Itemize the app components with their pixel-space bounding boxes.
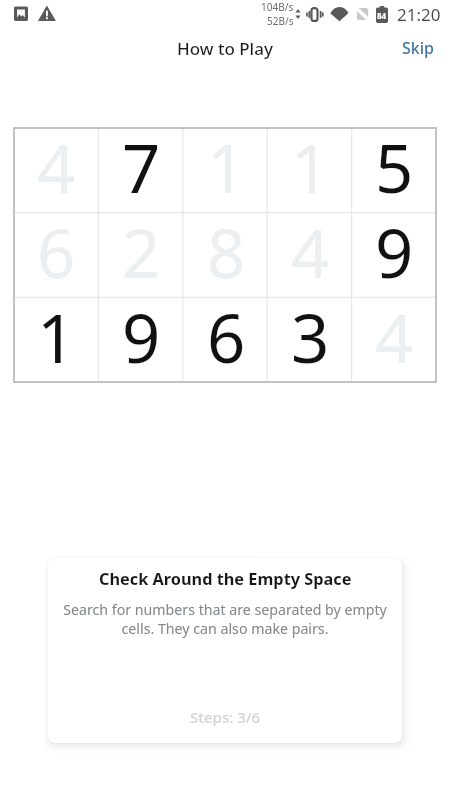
staticText: 8 bbox=[207, 206, 246, 291]
staticText: How to Play bbox=[177, 37, 273, 60]
button[interactable]: 4 bbox=[14, 128, 99, 213]
button[interactable]: 8 bbox=[184, 213, 268, 298]
button[interactable]: 6 bbox=[14, 213, 99, 298]
button[interactable]: 1 bbox=[14, 298, 99, 382]
staticText: 1 bbox=[291, 121, 330, 206]
staticText: 3 bbox=[291, 291, 330, 375]
button[interactable]: 2 bbox=[99, 213, 184, 298]
button[interactable]: Check Around the Empty Space bbox=[48, 558, 402, 743]
staticText: Search for numbers that are separated by… bbox=[54, 600, 396, 639]
button[interactable]: 7 bbox=[99, 128, 184, 213]
staticText: 9 bbox=[122, 291, 161, 375]
button[interactable]: Skip bbox=[386, 29, 450, 67]
staticText: 21:20 bbox=[397, 3, 441, 26]
button[interactable]: 4 bbox=[352, 298, 436, 382]
staticText: 6 bbox=[207, 291, 246, 375]
staticText: 9 bbox=[375, 206, 414, 291]
button[interactable]: 5 bbox=[352, 128, 436, 213]
staticText: 4 bbox=[291, 206, 330, 291]
staticText: 4 bbox=[375, 291, 414, 375]
staticText: 104B/s bbox=[261, 0, 294, 14]
staticText: 4 bbox=[37, 121, 76, 206]
staticText: Check Around the Empty Space bbox=[99, 568, 352, 590]
button[interactable]: 1 bbox=[268, 128, 352, 213]
staticText: 52B/s bbox=[267, 14, 294, 28]
staticText: 1 bbox=[207, 121, 246, 206]
staticText: 1 bbox=[37, 291, 76, 375]
button[interactable]: 9 bbox=[352, 213, 436, 298]
staticText: 5 bbox=[375, 121, 414, 206]
button[interactable]: 9 bbox=[99, 298, 184, 382]
button[interactable]: 3 bbox=[268, 298, 352, 382]
button[interactable]: 4 bbox=[268, 213, 352, 298]
staticText: Steps: 3/6 bbox=[190, 707, 261, 727]
staticText: Skip bbox=[402, 37, 434, 59]
button[interactable]: 6 bbox=[184, 298, 268, 382]
staticText: 6 bbox=[37, 206, 76, 291]
button[interactable]: 1 bbox=[184, 128, 268, 213]
staticText: 7 bbox=[122, 121, 161, 206]
staticText: 84 bbox=[377, 10, 387, 21]
staticText: 2 bbox=[122, 206, 161, 291]
